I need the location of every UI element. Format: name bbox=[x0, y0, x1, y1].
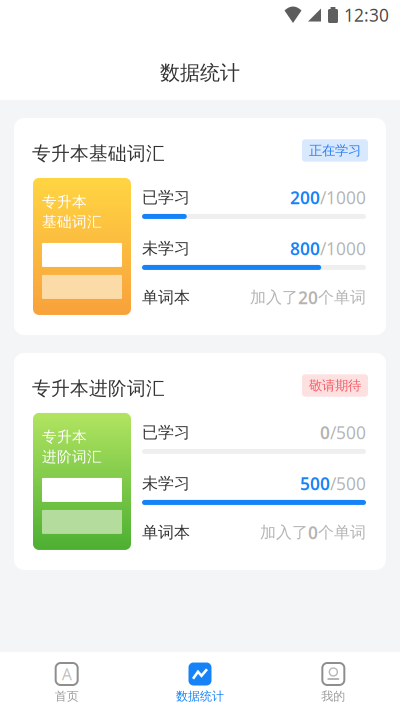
staticText: 未学习 bbox=[142, 239, 190, 258]
staticText: 我的 bbox=[321, 689, 345, 704]
staticText: 进阶词汇 bbox=[42, 448, 102, 466]
staticText: 200 bbox=[290, 186, 320, 209]
staticText: 未学习 bbox=[142, 474, 190, 493]
button[interactable]: A bbox=[0, 652, 133, 711]
staticText: 500 bbox=[300, 472, 330, 495]
staticText: /500 bbox=[330, 421, 366, 444]
staticText: 0 bbox=[308, 521, 318, 544]
staticText: 单词本 bbox=[142, 523, 190, 542]
staticText: 800 bbox=[290, 237, 320, 260]
staticText: 个单词 bbox=[318, 288, 366, 307]
staticText: 0 bbox=[320, 421, 330, 444]
staticText: 正在学习 bbox=[309, 142, 361, 159]
staticText: 专升本基础词汇 bbox=[32, 142, 165, 165]
staticText: 首页 bbox=[55, 689, 79, 704]
staticText: 加入了 bbox=[260, 523, 308, 542]
staticText: /1000 bbox=[320, 186, 366, 209]
staticText: 专升本 bbox=[42, 428, 87, 446]
staticText: 基础词汇 bbox=[42, 213, 102, 231]
staticText: 数据统计 bbox=[176, 689, 224, 704]
staticText: 已学习 bbox=[142, 423, 190, 442]
staticText: 专升本进阶词汇 bbox=[32, 377, 165, 400]
staticText: A bbox=[62, 663, 72, 685]
staticText: /500 bbox=[330, 472, 366, 495]
staticText: 数据统计 bbox=[160, 60, 240, 85]
staticText: 已学习 bbox=[142, 188, 190, 207]
staticText: 敬请期待 bbox=[309, 377, 361, 394]
staticText: 20 bbox=[298, 286, 318, 309]
staticText: 专升本 bbox=[42, 193, 87, 211]
button[interactable]: 数据统计 bbox=[133, 652, 267, 711]
staticText: 12:30 bbox=[344, 3, 389, 26]
staticText: /1000 bbox=[320, 237, 366, 260]
staticText: 加入了 bbox=[250, 288, 298, 307]
staticText: 单词本 bbox=[142, 288, 190, 307]
staticText: 个单词 bbox=[318, 523, 366, 542]
button[interactable]: 我的 bbox=[267, 652, 400, 711]
